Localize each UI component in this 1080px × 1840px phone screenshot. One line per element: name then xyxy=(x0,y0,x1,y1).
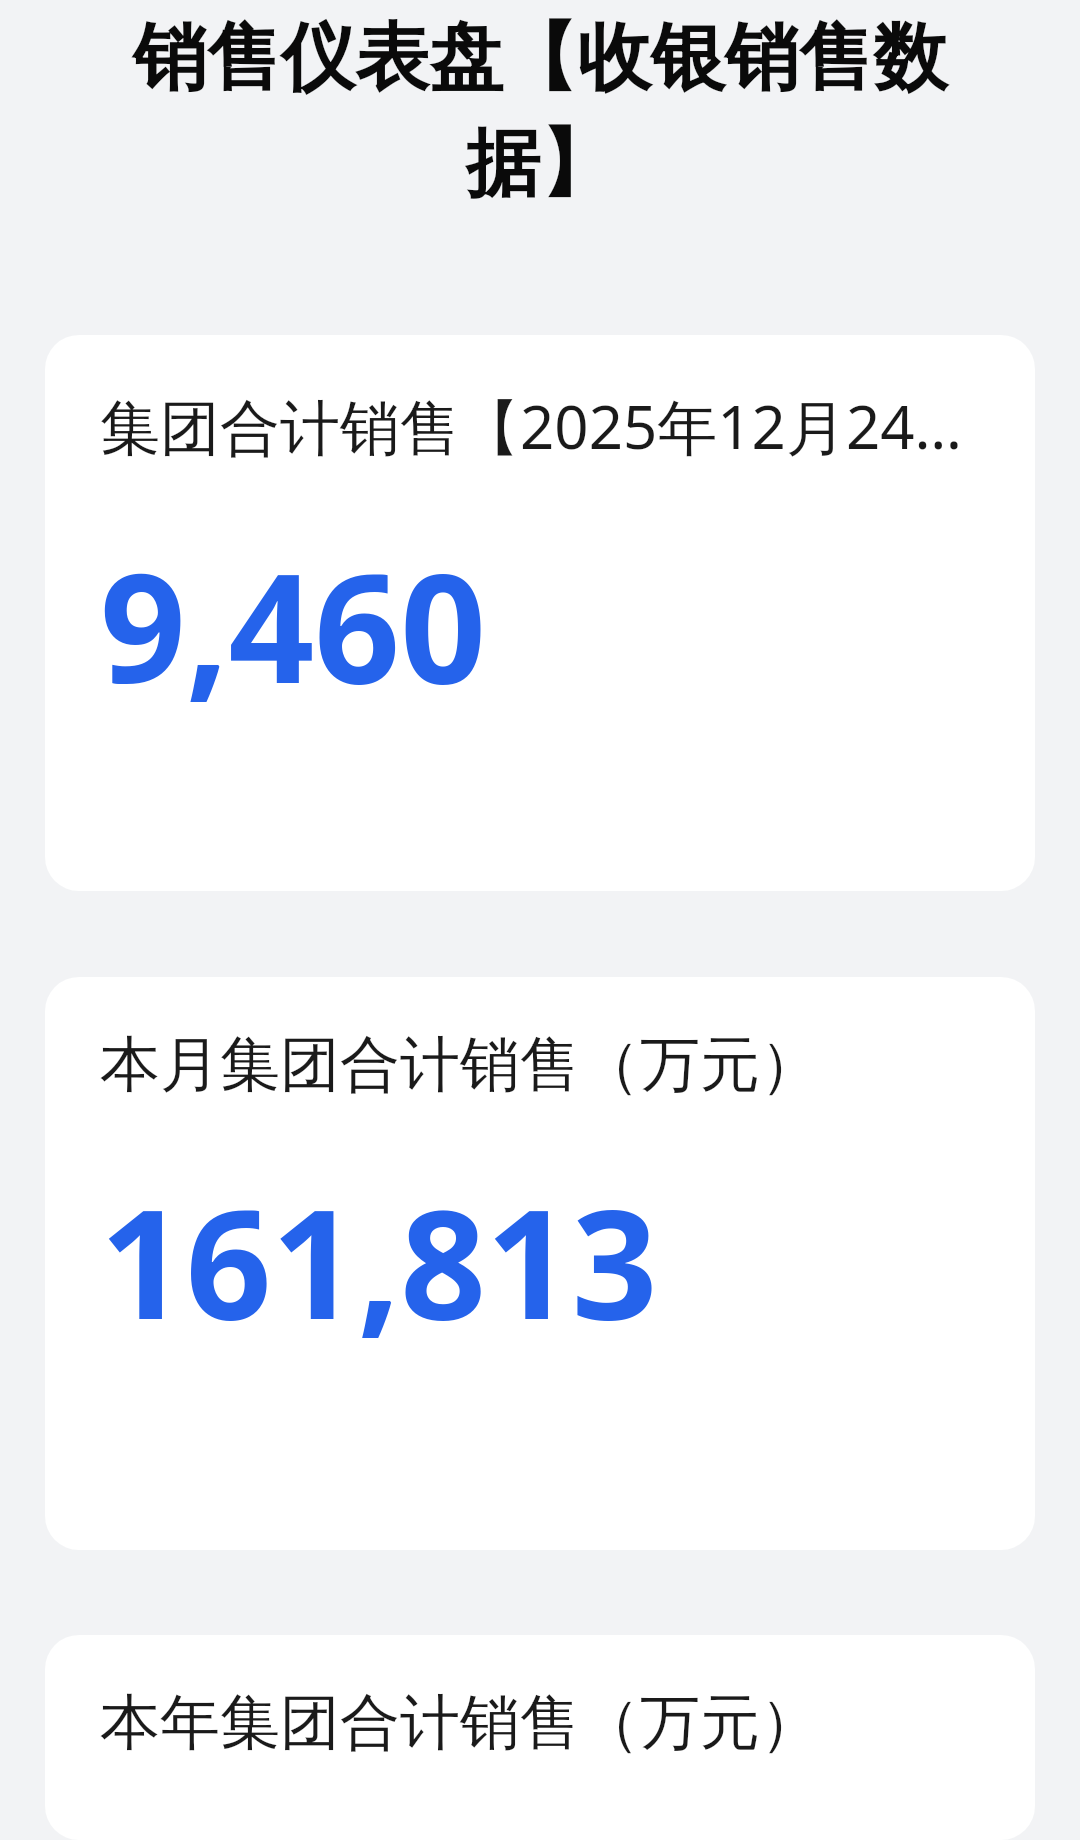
staticText: 销售仪表盘【收银销售数据】 xyxy=(66,12,1014,211)
button[interactable]: 本年集团合计销售（万元） xyxy=(45,1635,1035,1840)
staticText: 本月集团合计销售（万元） xyxy=(100,1027,820,1103)
button[interactable]: 本月集团合计销售（万元） xyxy=(45,977,1035,1550)
staticText: 集团合计销售【2025年12月24日… xyxy=(100,385,1009,467)
staticText: 161,813 xyxy=(100,1159,658,1363)
button[interactable]: 集团合计销售【2025年12月24日… xyxy=(45,335,1035,891)
staticText: 9,460 xyxy=(100,523,486,727)
staticText: 本年集团合计销售（万元） xyxy=(100,1685,820,1761)
